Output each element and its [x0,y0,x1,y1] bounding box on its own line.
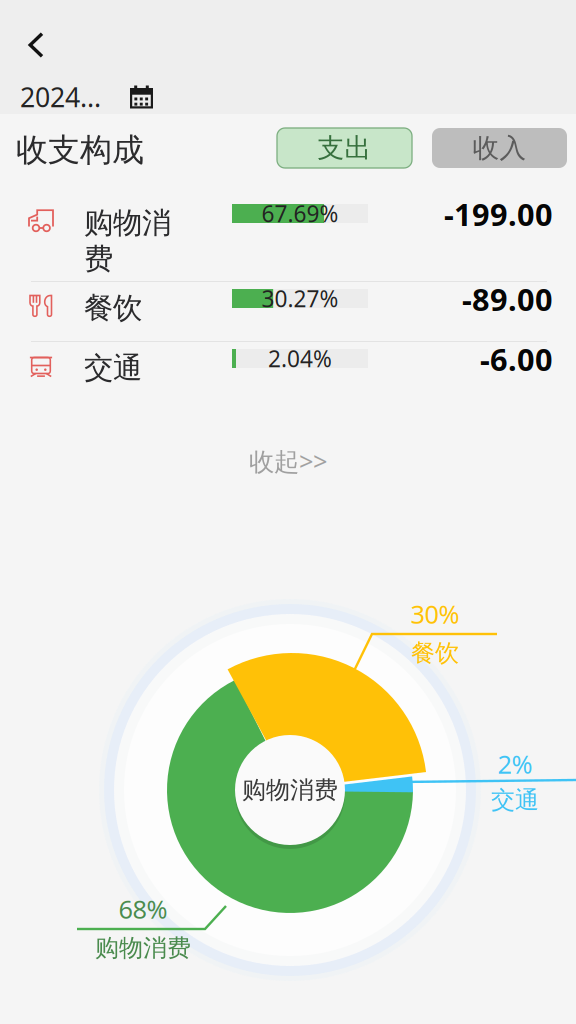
staticText: 购物消费 [242,775,338,805]
button[interactable]: 餐饮 [0,282,576,341]
staticText: 收入 [472,132,526,164]
button[interactable]: 2024年5月 [20,84,160,110]
staticText: 30% [410,597,459,631]
button[interactable]: Back [12,23,60,67]
staticText: 67.69% [261,198,338,228]
staticText: 30.27% [261,283,338,313]
staticText: 收起>> [249,444,327,478]
staticText: 交通 [491,785,539,815]
staticText: 68% [118,892,167,926]
staticText: 2% [497,747,532,781]
button[interactable]: 购物消 费 [0,174,576,281]
staticText: -6.00 [480,339,553,379]
staticText: 购物消费 [95,933,191,963]
staticText: 餐饮 [411,638,459,668]
staticText: 餐饮 [84,290,142,326]
staticText: 收支构成 [16,130,144,170]
staticText: 购物消 费 [84,205,171,277]
staticText: -89.00 [462,279,553,319]
staticText: 交通 [84,350,142,386]
button[interactable]: 支出 [277,128,412,168]
staticText: 支出 [317,132,371,164]
staticText: 2.04% [268,343,332,373]
button[interactable]: 收起>> [0,444,576,478]
staticText: 2024年5月 [20,79,119,115]
button[interactable]: 收入 [432,128,567,168]
staticText: -199.00 [444,194,553,234]
button[interactable]: 交通 [0,342,576,402]
